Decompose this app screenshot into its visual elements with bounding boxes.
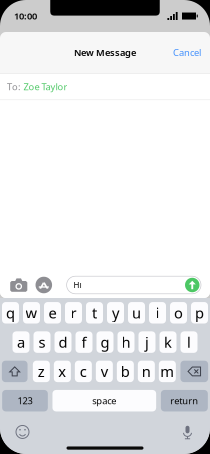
staticText: New Message (74, 46, 136, 59)
button[interactable]: j (138, 331, 155, 353)
button[interactable]: p (191, 302, 208, 323)
staticText: space (92, 394, 116, 407)
button[interactable]: k (159, 331, 176, 353)
button[interactable]: o (170, 302, 187, 323)
staticText: return (170, 394, 198, 407)
staticText: y (112, 303, 119, 323)
button[interactable]: w (23, 302, 40, 323)
staticText: To: (7, 80, 21, 93)
staticText: Cancel (173, 46, 201, 59)
button[interactable]: q (2, 302, 19, 323)
button[interactable]: Send (185, 278, 199, 292)
staticText: g (100, 332, 109, 352)
staticText: k (164, 332, 172, 352)
staticText: Hi (74, 280, 82, 290)
button[interactable]: h (117, 331, 134, 353)
button[interactable]: To: (0, 74, 210, 100)
button[interactable]: f (75, 331, 92, 353)
staticText: h (121, 332, 130, 352)
staticText: x (58, 362, 66, 381)
staticText: f (81, 332, 86, 352)
staticText: r (70, 303, 76, 323)
button[interactable]: e (44, 302, 61, 323)
button[interactable]: a (12, 331, 29, 353)
staticText: s (38, 332, 45, 352)
button[interactable]: v (96, 361, 113, 382)
staticText: e (48, 303, 56, 323)
staticText: o (174, 303, 183, 323)
staticText: b (121, 362, 130, 381)
button[interactable]: Shift (2, 361, 28, 382)
button[interactable]: 123 (2, 390, 48, 411)
button[interactable]: t (86, 302, 103, 323)
button[interactable]: d (54, 331, 71, 353)
staticText: q (6, 303, 15, 323)
button[interactable]: n (138, 361, 155, 382)
button[interactable]: Dictate (182, 425, 192, 439)
button[interactable]: g (96, 331, 113, 353)
button[interactable]: s (33, 331, 50, 353)
button[interactable]: i (149, 302, 166, 323)
button[interactable]: r (65, 302, 82, 323)
staticText: j (145, 332, 149, 352)
button[interactable]: z (33, 361, 50, 382)
button[interactable]: Apps (35, 277, 52, 293)
button[interactable]: y (107, 302, 124, 323)
button[interactable]: Camera (10, 278, 27, 292)
staticText: d (58, 332, 67, 352)
staticText: v (101, 362, 108, 381)
staticText: p (195, 303, 204, 323)
staticText: m (160, 362, 174, 381)
staticText: n (142, 362, 151, 381)
staticText: z (38, 362, 45, 381)
staticText: 123 (17, 394, 32, 407)
button[interactable]: u (128, 302, 145, 323)
button[interactable]: x (54, 361, 71, 382)
button[interactable]: Emoji (16, 425, 29, 438)
button[interactable]: m (159, 361, 176, 382)
button[interactable]: Delete (180, 361, 208, 382)
button[interactable]: Cancel (164, 38, 210, 67)
staticText: u (132, 303, 141, 323)
staticText: l (187, 332, 191, 352)
button[interactable]: return (161, 390, 208, 411)
staticText: i (155, 303, 159, 323)
button[interactable]: c (75, 361, 92, 382)
staticText: 10:00 (14, 10, 37, 22)
staticText: c (80, 362, 87, 381)
staticText: a (17, 332, 25, 352)
button[interactable]: b (117, 361, 134, 382)
staticText: w (25, 303, 37, 323)
button[interactable]: l (180, 331, 197, 353)
staticText: Zoe Taylor (23, 80, 67, 93)
staticText: t (92, 303, 97, 323)
button[interactable]: space (52, 390, 156, 411)
